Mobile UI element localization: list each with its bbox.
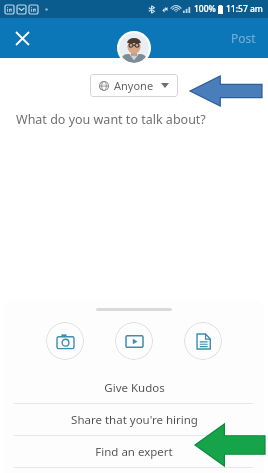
staticText: 11:57 am [226, 3, 263, 15]
staticText: Anyone [114, 78, 154, 93]
button[interactable]: Anyone [90, 74, 178, 97]
staticText: What do you want to talk about? [16, 111, 206, 128]
button[interactable]: Profile photo [119, 33, 149, 63]
button[interactable]: Add a document [184, 322, 222, 360]
button[interactable]: Post [231, 30, 256, 46]
button[interactable]: Add a video [115, 322, 153, 360]
button[interactable]: Find an expert [4, 436, 264, 467]
staticText: 100% [194, 3, 216, 15]
staticText: Post [231, 30, 256, 46]
button[interactable]: Add a photo [46, 322, 84, 360]
staticText: Find an expert [95, 444, 173, 460]
staticText: Give Kudos [104, 380, 165, 396]
button[interactable]: Close [8, 24, 36, 52]
staticText: Share that you're hiring [71, 412, 198, 428]
button[interactable]: Share that you're hiring [4, 404, 264, 435]
button[interactable]: Give Kudos [4, 372, 264, 403]
